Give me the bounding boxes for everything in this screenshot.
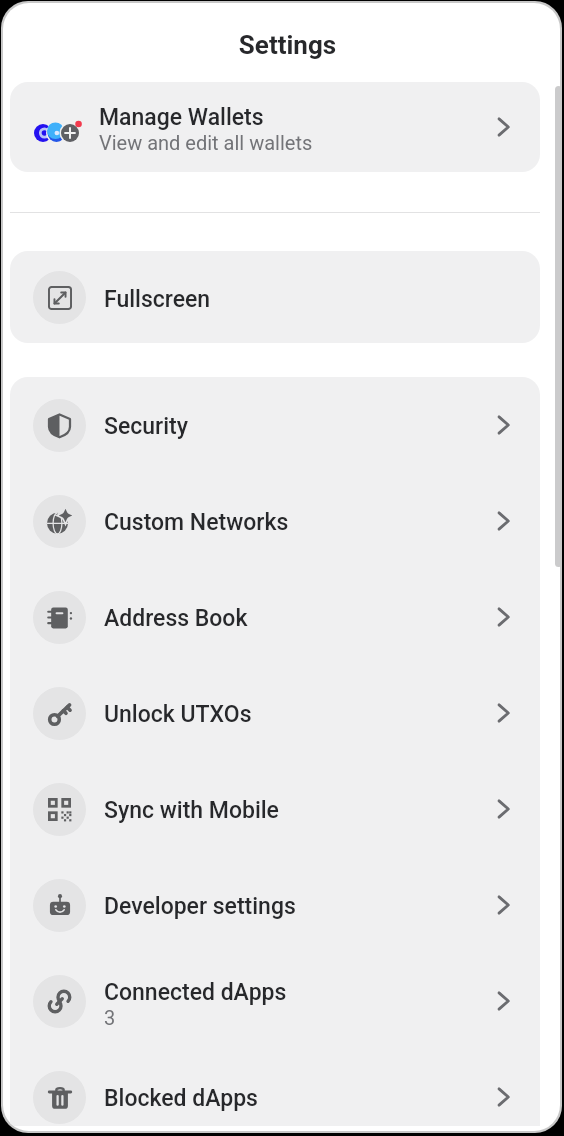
staticText: Manage Wallets [99,104,264,131]
button[interactable]: Blocked dApps [10,1049,540,1126]
staticText: Custom Networks [104,509,289,536]
staticText: Unlock UTXOs [104,701,252,728]
button[interactable]: Fullscreen [10,251,540,343]
staticText: Security [104,413,188,440]
button[interactable]: Address Book [10,569,540,665]
staticText: Settings [15,30,560,60]
staticText: View and edit all wallets [99,131,313,154]
button[interactable]: Custom Networks [10,473,540,569]
button[interactable]: Manage Wallets [10,82,540,172]
staticText: Developer settings [104,893,296,920]
button[interactable]: Connected dApps [10,953,540,1049]
button[interactable]: Unlock UTXOs [10,665,540,761]
button[interactable]: Sync with Mobile [10,761,540,857]
button[interactable]: Developer settings [10,857,540,953]
staticText: Connected dApps [104,979,287,1006]
button[interactable]: Security [10,377,540,473]
staticText: Blocked dApps [104,1085,258,1112]
staticText: Address Book [104,605,248,632]
staticText: 3 [104,1006,116,1029]
staticText: Sync with Mobile [104,797,279,824]
staticText: Fullscreen [104,286,211,313]
